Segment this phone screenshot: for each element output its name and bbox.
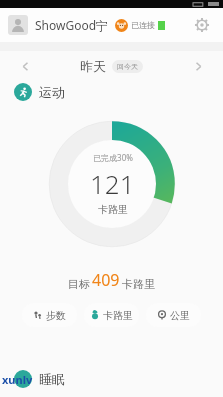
staticText: 409: [92, 269, 120, 291]
staticText: 卡路里: [98, 203, 128, 216]
staticText: 运动: [39, 84, 65, 100]
staticText: 步数: [46, 309, 66, 322]
button[interactable]: Settings: [189, 12, 215, 38]
button[interactable]: 已完成30%: [68, 140, 156, 228]
button[interactable]: Profile avatar: [8, 15, 28, 35]
staticText: xunlv: [2, 372, 33, 387]
staticText: 卡路里: [122, 277, 155, 291]
button[interactable]: 回今天: [112, 60, 143, 73]
button[interactable]: Next day: [187, 55, 209, 77]
button[interactable]: 运动: [0, 81, 223, 103]
staticText: 公里: [170, 309, 190, 322]
staticText: 已连接: [131, 20, 155, 30]
button[interactable]: 公里: [146, 303, 201, 327]
staticText: 已完成30%: [93, 152, 133, 163]
staticText: 目标: [68, 277, 90, 291]
button[interactable]: Previous day: [14, 55, 36, 77]
staticText: 昨天: [80, 58, 106, 74]
staticText: 121: [90, 166, 135, 201]
button[interactable]: 步数: [22, 303, 77, 327]
staticText: ShowGood宁: [35, 17, 109, 33]
staticText: 睡眠: [39, 371, 65, 387]
button[interactable]: 睡眠: [0, 367, 223, 391]
button[interactable]: 卡路里: [84, 303, 139, 327]
staticText: 回今天: [117, 62, 138, 71]
staticText: 卡路里: [103, 309, 133, 322]
